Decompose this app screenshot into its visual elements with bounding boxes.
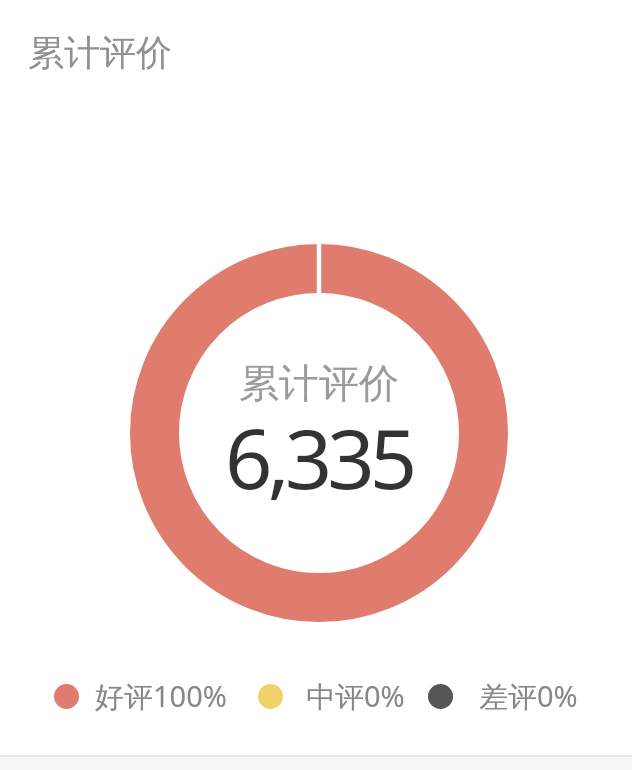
- button[interactable]: 好评100%: [54, 676, 227, 716]
- button[interactable]: 中评0%: [258, 676, 405, 716]
- staticText: 差评0%: [479, 676, 578, 716]
- staticText: 好评100%: [95, 676, 227, 716]
- staticText: 累计评价: [239, 358, 399, 408]
- staticText: 中评0%: [306, 676, 405, 716]
- staticText: 累计评价: [28, 30, 172, 75]
- staticText: 6,335: [225, 400, 413, 513]
- button[interactable]: 差评0%: [428, 676, 578, 716]
